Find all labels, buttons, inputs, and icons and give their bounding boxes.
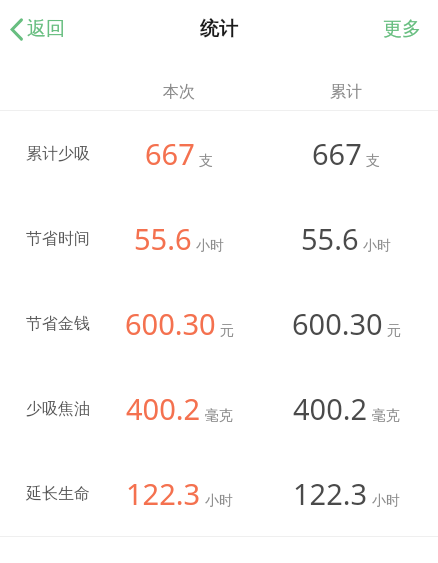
staticText: 55.6 xyxy=(134,219,192,258)
staticText: 本次 xyxy=(163,82,195,102)
staticText: 400.2 xyxy=(293,389,368,428)
staticText: 400.2 xyxy=(126,389,201,428)
staticText: 600.30 xyxy=(125,304,216,343)
staticText: 支 xyxy=(199,152,213,170)
staticText: 小时 xyxy=(372,492,400,510)
button[interactable]: 累计少吸 xyxy=(0,111,438,196)
button[interactable]: Back xyxy=(0,8,79,50)
staticText: 累计少吸 xyxy=(26,144,90,164)
staticText: 统计 xyxy=(200,17,238,41)
staticText: 元 xyxy=(220,322,234,340)
other: Back xyxy=(11,19,22,40)
button[interactable]: 延长生命 xyxy=(0,451,438,536)
staticText: 支 xyxy=(366,152,380,170)
staticText: 节省时间 xyxy=(26,229,90,249)
staticText: 毫克 xyxy=(372,407,400,425)
staticText: 更多 xyxy=(383,17,421,41)
staticText: 返回 xyxy=(27,17,65,41)
staticText: 122.3 xyxy=(126,474,201,513)
staticText: 元 xyxy=(387,322,401,340)
staticText: 667 xyxy=(145,134,195,173)
staticText: 毫克 xyxy=(205,407,233,425)
staticText: 122.3 xyxy=(293,474,368,513)
staticText: 600.30 xyxy=(292,304,383,343)
staticText: 55.6 xyxy=(301,219,359,258)
button[interactable]: 少吸焦油 xyxy=(0,366,438,451)
staticText: 节省金钱 xyxy=(26,314,90,334)
staticText: 累计 xyxy=(330,82,362,102)
button[interactable]: 更多 xyxy=(366,5,438,53)
staticText: 少吸焦油 xyxy=(26,399,90,419)
button[interactable]: 节省金钱 xyxy=(0,281,438,366)
staticText: 667 xyxy=(312,134,362,173)
staticText: 小时 xyxy=(196,237,224,255)
button[interactable]: 节省时间 xyxy=(0,196,438,281)
staticText: 小时 xyxy=(205,492,233,510)
staticText: 小时 xyxy=(363,237,391,255)
staticText: 延长生命 xyxy=(26,484,90,504)
